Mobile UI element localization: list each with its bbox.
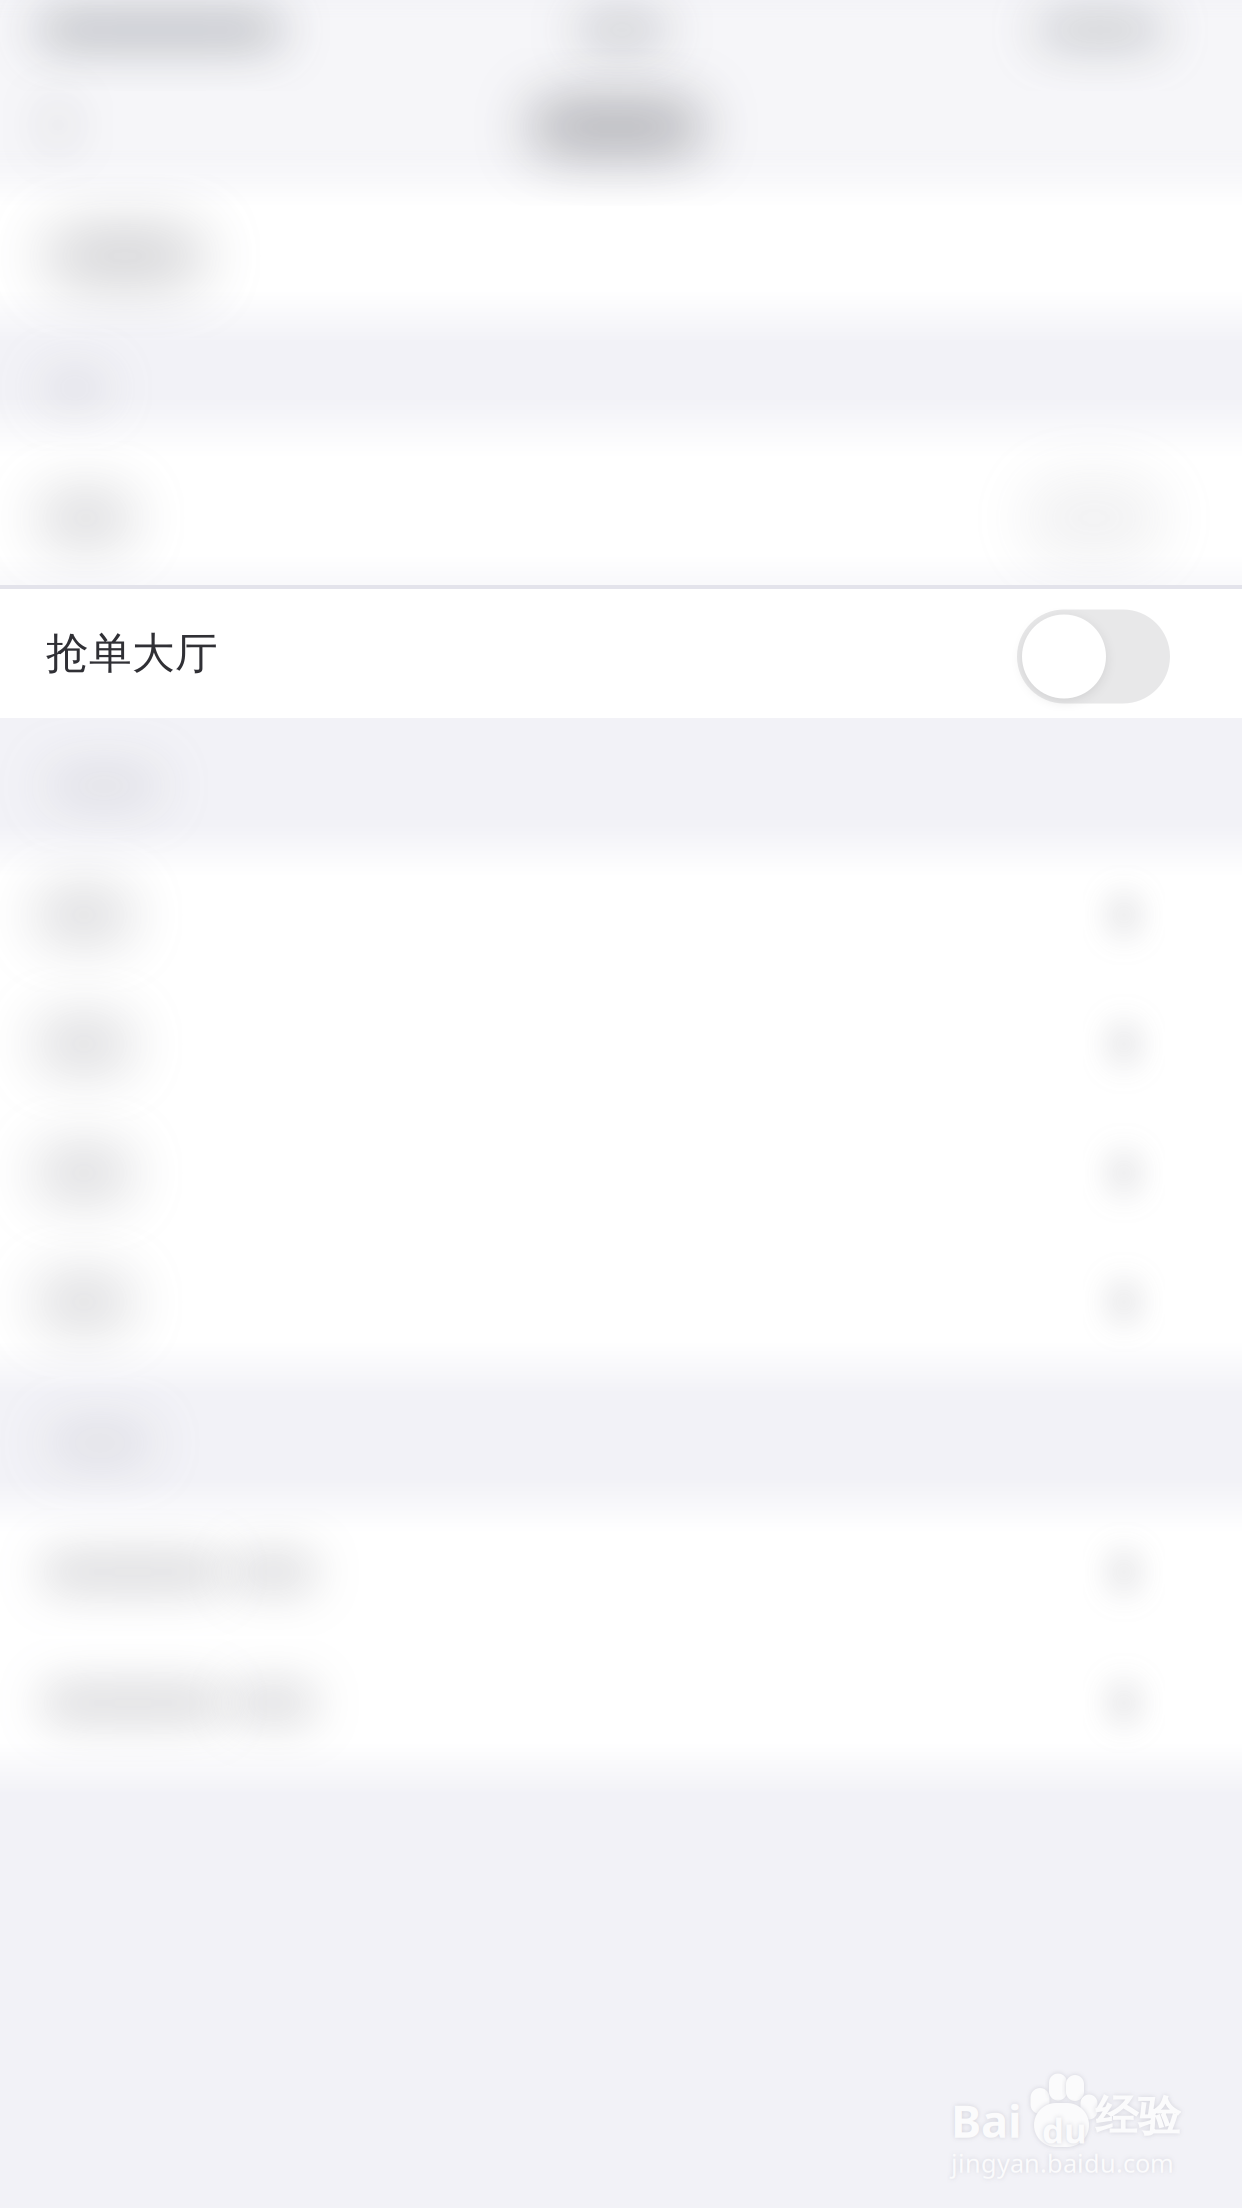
button[interactable]: Setting row 4: [0, 980, 1242, 1109]
button[interactable]: Setting row 5: [0, 1109, 1242, 1238]
staticText: Bai: [951, 2090, 1022, 2150]
button[interactable]: Setting row 1: [0, 181, 1242, 316]
staticText: du: [1042, 2107, 1087, 2153]
staticText: jingyan.baidu.com: [951, 2146, 1174, 2180]
staticText: 经验: [1095, 2090, 1181, 2142]
staticText: 抢单大厅: [46, 627, 218, 680]
button[interactable]: Setting row 3: [0, 851, 1242, 980]
button[interactable]: Setting row 8: [0, 1637, 1242, 1768]
button[interactable]: 抢单大厅: [0, 589, 1242, 718]
button[interactable]: Setting row 7: [0, 1507, 1242, 1637]
button[interactable]: Setting row 6: [0, 1238, 1242, 1367]
button[interactable]: Setting row 2: [0, 428, 1242, 585]
